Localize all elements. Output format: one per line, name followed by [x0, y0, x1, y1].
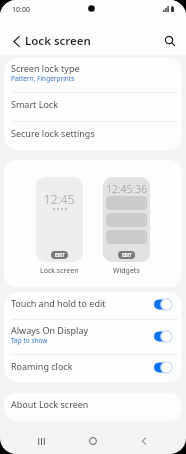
button[interactable]: Secure lock settings [4, 122, 182, 150]
staticText: Widgets [113, 266, 140, 276]
staticText: Roaming clock [11, 360, 73, 372]
button[interactable]: Recent apps [28, 428, 54, 454]
button[interactable]: Smart Lock [4, 93, 182, 121]
button[interactable]: Navigate up [5, 30, 27, 52]
staticText: EDIT [55, 252, 65, 258]
staticText: Secure lock settings [11, 127, 95, 139]
staticText: EDIT [122, 252, 132, 258]
staticText: 12:45:36 [106, 182, 147, 196]
button[interactable]: Screen lock type [4, 58, 182, 92]
staticText: Screen lock type [11, 62, 80, 74]
button[interactable]: Edit [51, 251, 68, 259]
staticText: Tap to show [11, 336, 48, 345]
staticText: Always On Display [11, 324, 89, 336]
button[interactable]: Roaming clock [4, 355, 182, 382]
staticText: About Lock screen [11, 398, 89, 410]
staticText: Pattern, Fingerprints [11, 74, 75, 83]
button[interactable]: About Lock screen [4, 393, 182, 421]
staticText: Touch and hold to edit [11, 297, 106, 309]
staticText: Smart Lock [11, 98, 58, 110]
button[interactable]: Home [80, 428, 106, 454]
button[interactable]: Back [131, 428, 157, 454]
button[interactable]: Always On Display [4, 320, 182, 354]
staticText: 10:00 [12, 5, 30, 15]
staticText: 12:45 [44, 191, 75, 207]
button[interactable]: Lock screen preview [36, 177, 83, 262]
button[interactable]: Touch and hold to edit [4, 292, 182, 319]
button[interactable]: Search [159, 30, 181, 52]
staticText: Lock screen [25, 33, 91, 49]
button[interactable]: Edit [118, 251, 135, 259]
staticText: Lock screen [40, 266, 79, 276]
button[interactable]: Widgets preview [103, 177, 150, 262]
